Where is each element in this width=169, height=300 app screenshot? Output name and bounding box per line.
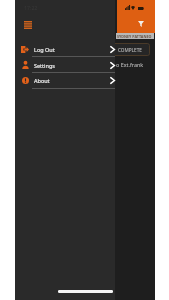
button[interactable]: Filter — [135, 18, 146, 29]
staticText: Settings — [34, 62, 55, 69]
staticText: About — [34, 77, 50, 84]
staticText: o Ext.frank — [116, 61, 144, 68]
button[interactable]: Log Out — [15, 41, 115, 57]
button[interactable]: About — [15, 72, 115, 88]
staticText: SYDNEY PATTANEO — [117, 34, 152, 39]
staticText: Log Out — [34, 46, 55, 53]
button[interactable]: Settings — [15, 57, 115, 73]
button[interactable]: Open navigation menu — [24, 21, 32, 29]
button[interactable]: COMPLETE — [104, 43, 150, 56]
staticText: COMPLETE — [118, 47, 142, 53]
